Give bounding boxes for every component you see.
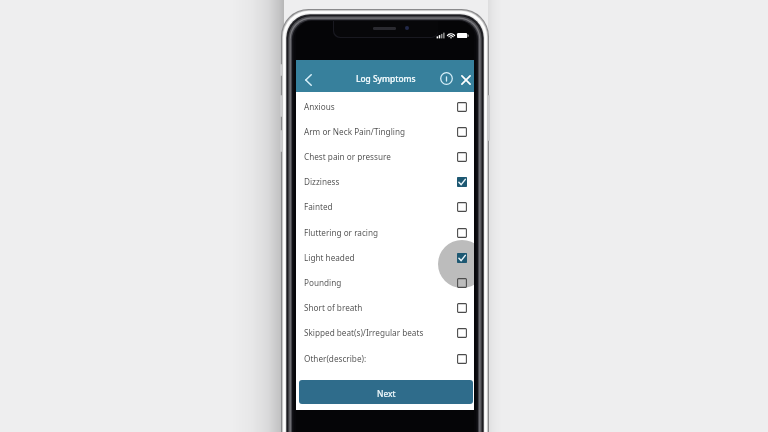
- staticText: Short of breath: [304, 302, 363, 313]
- button[interactable]: Next: [299, 380, 473, 404]
- staticText: Dizziness: [304, 176, 340, 187]
- button[interactable]: Dizziness: [296, 169, 474, 194]
- button[interactable]: Fluttering or racing: [296, 220, 474, 245]
- button[interactable]: Information: [437, 69, 456, 88]
- button[interactable]: Close: [456, 70, 474, 89]
- staticText: Pounding: [304, 277, 342, 288]
- button[interactable]: Skipped beat(s)/Irregular beats: [296, 320, 474, 345]
- button[interactable]: Light headed: [296, 245, 474, 270]
- staticText: Other(describe):: [304, 353, 367, 364]
- button[interactable]: Other(describe):: [296, 346, 474, 371]
- button[interactable]: Back: [297, 60, 319, 92]
- button[interactable]: Fainted: [296, 194, 474, 219]
- staticText: Fainted: [304, 201, 333, 212]
- button[interactable]: Pounding: [296, 270, 474, 295]
- staticText: Light headed: [304, 252, 355, 263]
- button[interactable]: Arm or Neck Pain/Tingling: [296, 119, 474, 144]
- button[interactable]: Short of breath: [296, 295, 474, 320]
- button[interactable]: Anxious: [296, 94, 474, 119]
- staticText: Fluttering or racing: [304, 227, 379, 238]
- staticText: Chest pain or pressure: [304, 151, 391, 162]
- staticText: Anxious: [304, 101, 335, 112]
- button[interactable]: Chest pain or pressure: [296, 144, 474, 169]
- staticText: Next: [377, 388, 396, 399]
- staticText: Skipped beat(s)/Irregular beats: [304, 327, 424, 338]
- staticText: Arm or Neck Pain/Tingling: [304, 126, 405, 137]
- staticText: Log Symptoms: [356, 73, 416, 84]
